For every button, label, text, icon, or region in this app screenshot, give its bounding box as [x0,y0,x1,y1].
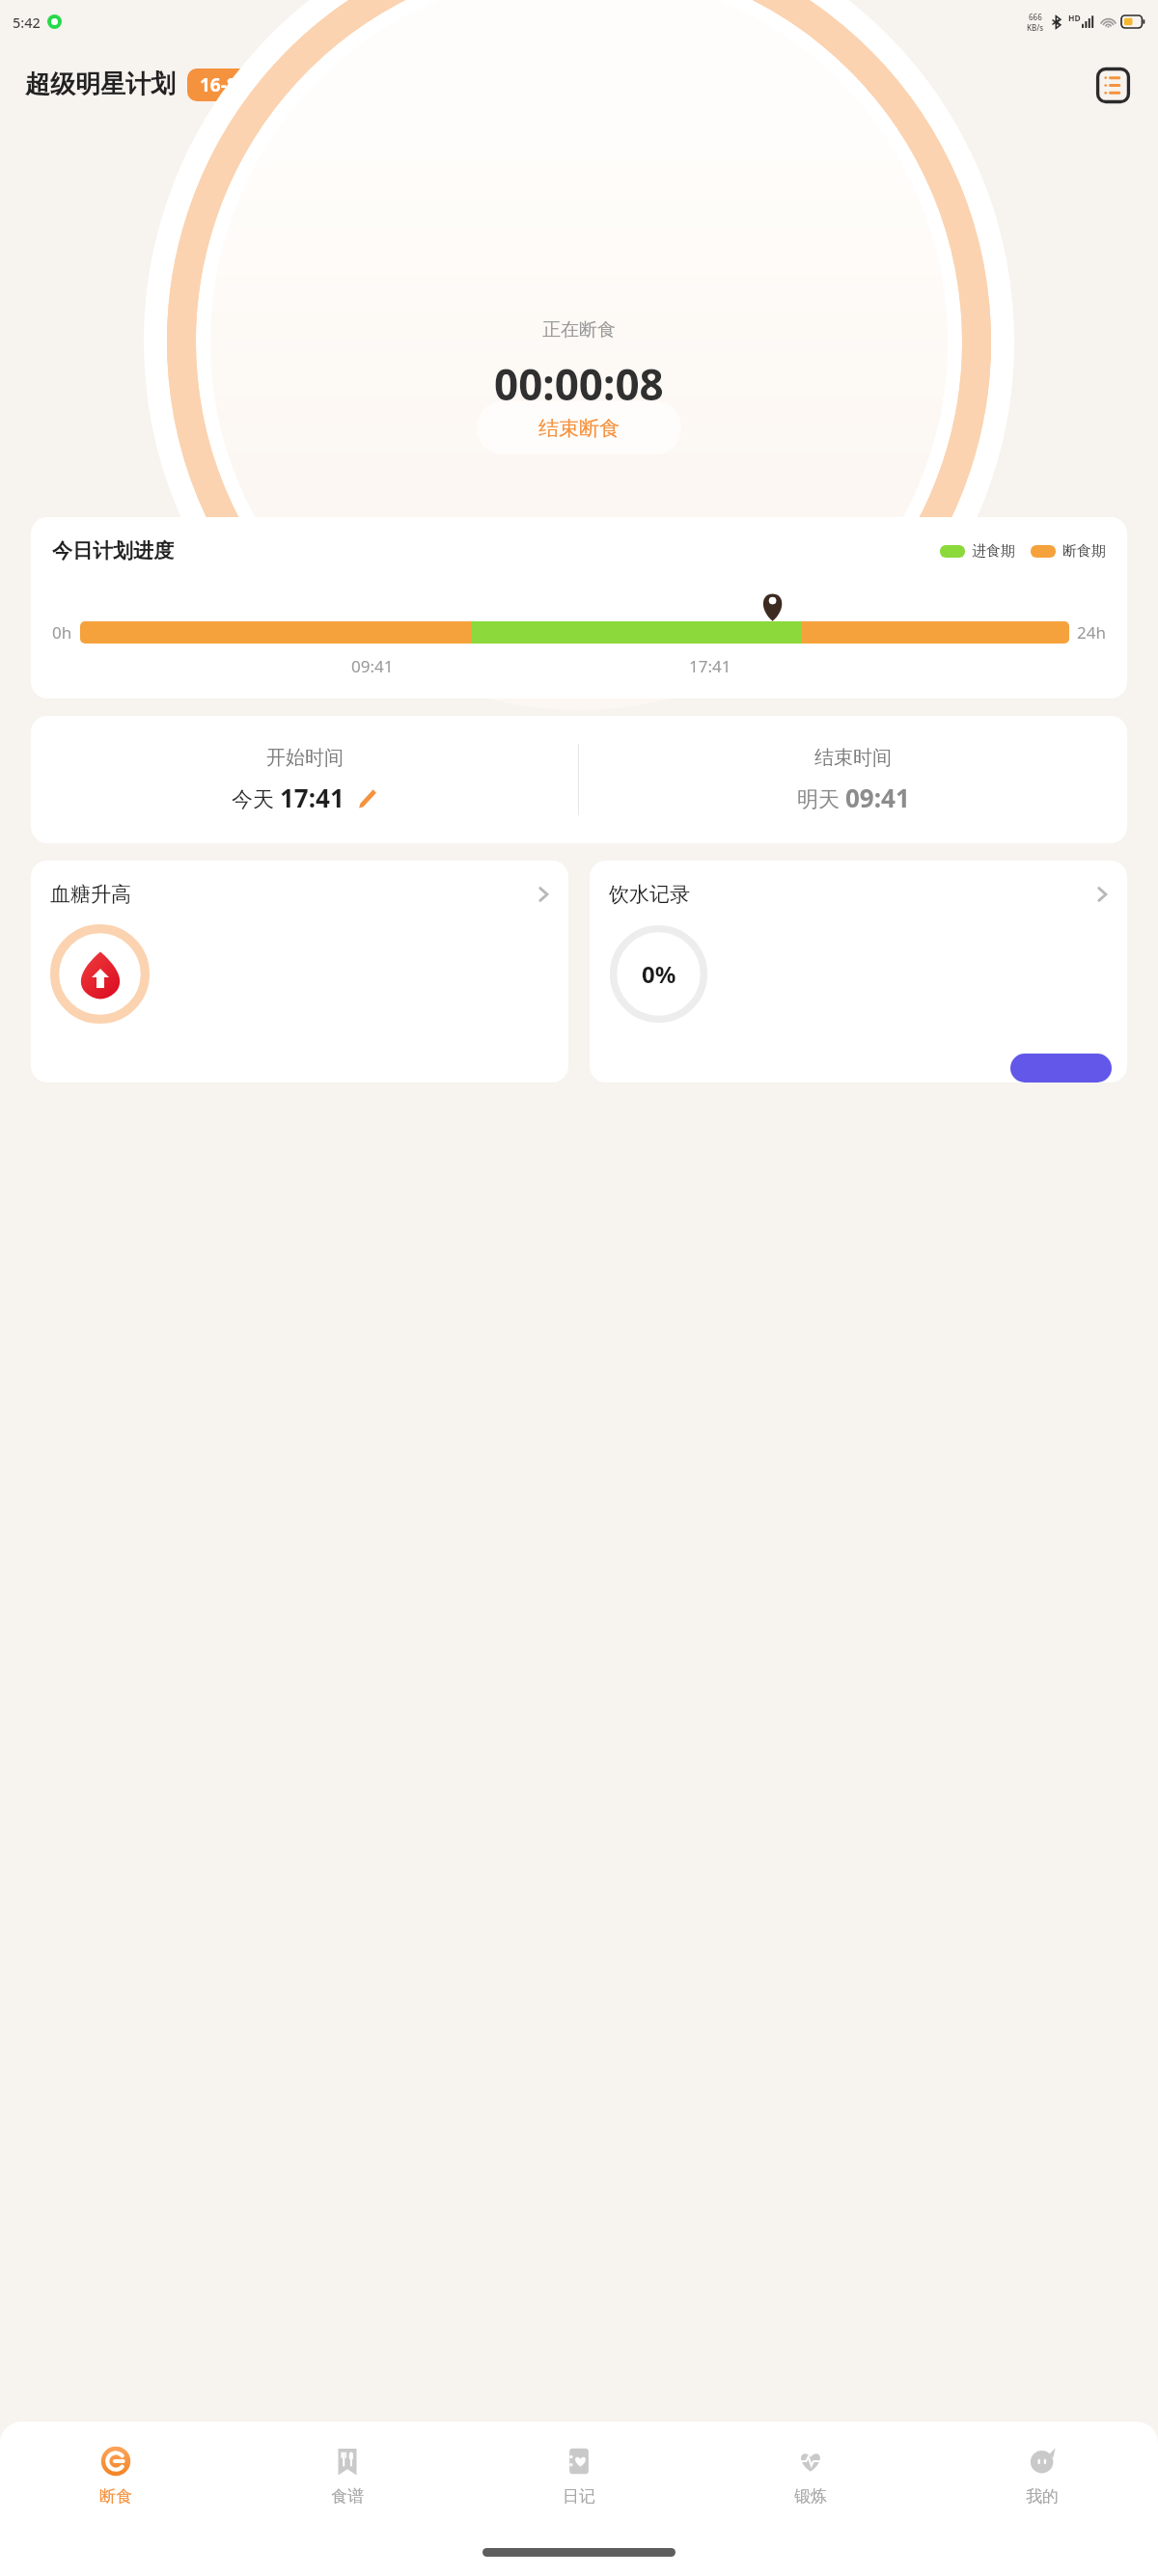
staticText: 结束时间 [814,746,892,770]
button[interactable]: 我的 [926,2422,1158,2528]
staticText: 00:00:08 [494,355,664,413]
staticText: 今天 [232,783,280,812]
button[interactable]: 今日计划进度 [31,517,1127,699]
staticText: 断食 [99,2486,132,2507]
button[interactable]: 锻炼 [695,2422,926,2528]
staticText: 进食期 [972,542,1015,561]
staticText: 5:42 [13,13,41,32]
staticText: 0h [52,621,72,644]
staticText: 饮水记录 [609,882,690,907]
staticText: 24h [1077,621,1106,644]
button[interactable]: 开始时间 [31,716,578,843]
button[interactable]: 食谱 [232,2422,463,2528]
button[interactable]: 血糖升高 [31,861,568,1082]
staticText: 09:41 [845,781,910,814]
staticText: 16-8 [200,72,237,97]
staticText: 今日计划进度 [52,538,174,563]
staticText: 开始时间 [266,746,344,770]
staticText: 17:41 [689,655,858,677]
staticText: 断食期 [1062,542,1106,561]
staticText: 666 [1029,12,1042,22]
staticText: KB/s [1027,22,1044,33]
staticText: 血糖升高 [50,882,131,907]
staticText: 09:41 [351,655,520,677]
button[interactable]: 断食 [0,2422,232,2528]
button[interactable]: 日记 [463,2422,695,2528]
staticText: 锻炼 [794,2486,827,2507]
staticText: HD [1068,13,1081,24]
staticText: 17:41 [280,781,345,814]
button[interactable]: Plan list [1092,65,1133,105]
staticText: 我的 [1026,2486,1059,2507]
button[interactable]: 结束断食 [477,401,681,454]
button[interactable]: 16-8 [200,72,237,97]
staticText: 明天 [797,783,845,812]
staticText: 超级明星计划 [25,69,176,100]
button[interactable]: 饮水记录 [590,861,1127,1082]
staticText: 0% [642,958,676,990]
staticText: 结束断食 [538,416,620,441]
staticText: 已完成0% [538,421,620,446]
staticText: 正在断食 [542,318,616,342]
button[interactable]: 结束时间 [579,716,1127,843]
staticText: 日记 [563,2486,595,2507]
staticText: 食谱 [331,2486,364,2507]
